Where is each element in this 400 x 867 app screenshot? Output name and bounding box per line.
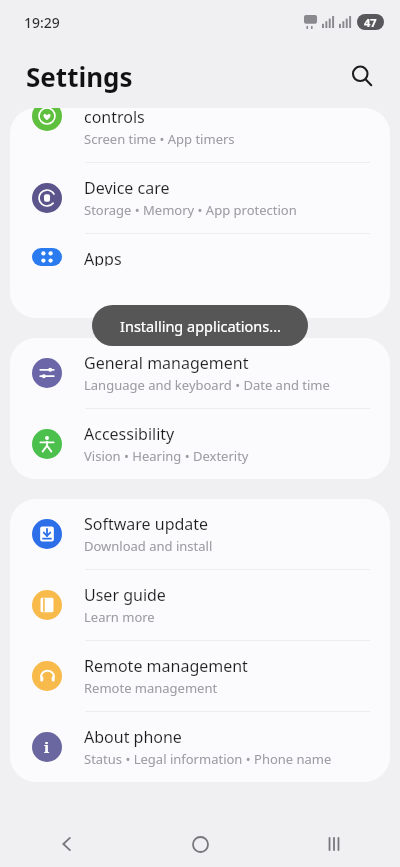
staticText: Download and install [84, 537, 213, 555]
staticText: Accessibility [84, 423, 175, 445]
staticText: 19:29 [24, 13, 60, 32]
button[interactable]: Accessibility [10, 409, 390, 479]
staticText: i [44, 737, 50, 757]
staticText: Screen time • App timers [84, 130, 235, 148]
staticText: Language and keyboard • Date and time [84, 376, 330, 394]
button[interactable]: Software update [10, 499, 390, 569]
button[interactable]: Search [342, 56, 382, 96]
staticText: 47 [364, 15, 377, 30]
staticText: General management [84, 352, 249, 374]
staticText: Apps [84, 248, 122, 266]
staticText: Status • Legal information • Phone name [84, 750, 332, 768]
button[interactable]: Device care [10, 163, 390, 233]
staticText: Storage • Memory • App protection [84, 201, 297, 219]
staticText: Learn more [84, 608, 155, 626]
staticText: About phone [84, 726, 182, 748]
staticText: Software update [84, 513, 209, 535]
button[interactable]: Apps [10, 234, 390, 280]
staticText: Settings [26, 59, 133, 94]
button[interactable]: i [10, 712, 390, 782]
staticText: Remote management [84, 679, 218, 697]
staticText: Device care [84, 177, 170, 199]
button[interactable]: Remote management [10, 641, 390, 711]
staticText: Remote management [84, 655, 248, 677]
button[interactable]: Home [134, 821, 267, 867]
staticText: Vision • Hearing • Dexterity [84, 447, 249, 465]
staticText: Installing applications... [120, 316, 281, 336]
button[interactable]: General management [10, 338, 390, 408]
button[interactable]: User guide [10, 570, 390, 640]
button[interactable]: Back [0, 821, 134, 867]
staticText: Digital wellbeing and parental controls [84, 108, 372, 128]
button[interactable]: Digital wellbeing and parental controls [10, 108, 390, 162]
button[interactable]: Recents [267, 821, 400, 867]
staticText: User guide [84, 584, 166, 606]
